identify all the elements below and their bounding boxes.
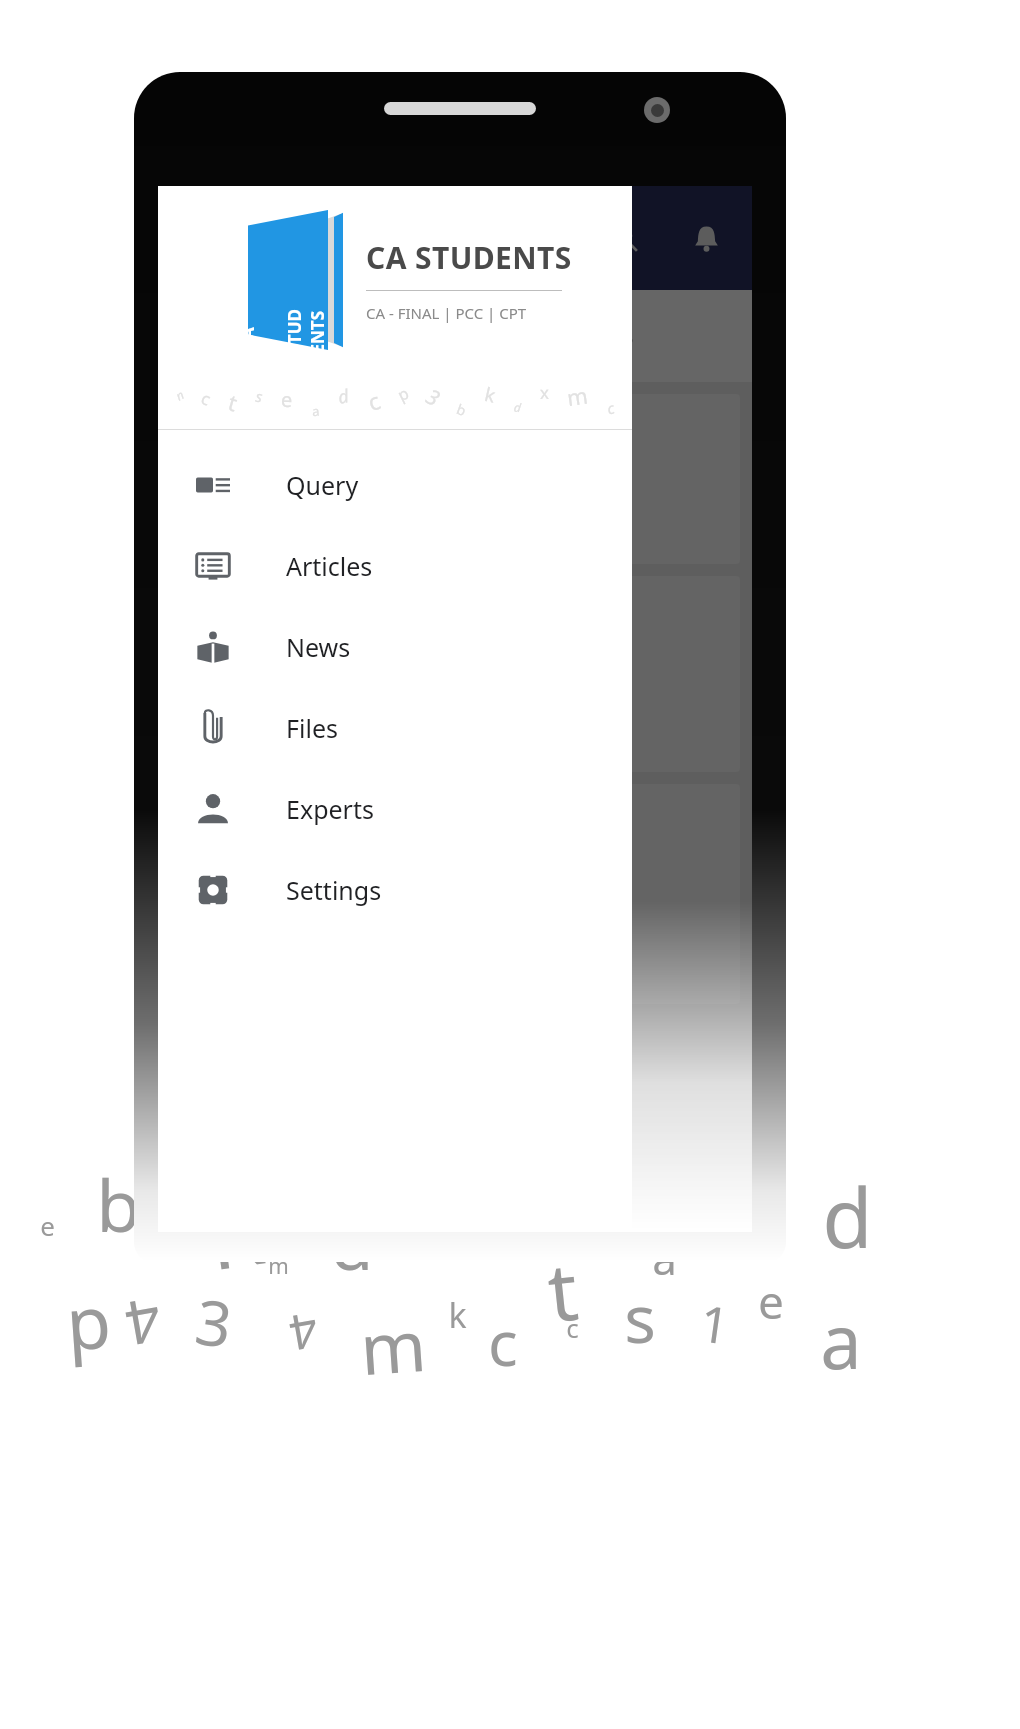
staticText: 4: [119, 1280, 168, 1366]
staticText: News: [286, 630, 351, 664]
staticText: c: [363, 384, 385, 417]
staticText: 3: [190, 1278, 238, 1366]
staticText: m: [357, 1296, 429, 1395]
staticText: d: [822, 1160, 873, 1272]
button[interactable]: India's dia's: [170, 394, 740, 564]
staticText: c: [488, 1300, 518, 1384]
staticText: c: [604, 397, 616, 418]
staticText: s: [254, 386, 264, 406]
staticText: x: [540, 381, 549, 404]
button[interactable]: Search: [596, 210, 652, 266]
button[interactable]: News: [158, 606, 632, 687]
staticText: e: [40, 1208, 55, 1243]
staticText: e: [280, 386, 293, 413]
staticText: p: [63, 1270, 114, 1371]
staticText: b: [454, 399, 469, 420]
staticText: d: [330, 1195, 374, 1290]
staticText: c: [198, 386, 215, 411]
staticText: c: [752, 1228, 766, 1266]
staticText: 1: [695, 1288, 734, 1360]
button[interactable]: Experts: [158, 768, 632, 849]
staticText: e: [758, 1270, 784, 1333]
staticText: t: [542, 1234, 583, 1345]
staticText: Settings: [286, 873, 382, 907]
staticText: Articles: [286, 549, 373, 583]
staticText: Files: [286, 711, 338, 745]
button[interactable]: Files: [158, 687, 632, 768]
staticText: m: [268, 1250, 289, 1280]
staticText: FILES: [573, 321, 635, 351]
staticText: 3: [421, 382, 445, 413]
staticText: t: [225, 386, 241, 417]
staticText: p: [394, 382, 412, 406]
staticText: a: [820, 1290, 862, 1391]
button[interactable]: Query: [158, 444, 632, 525]
button[interactable]: Articles: [158, 525, 632, 606]
staticText: K: [200, 1172, 270, 1295]
staticText: e: [412, 1222, 433, 1271]
button[interactable]: [170, 576, 740, 772]
staticText: k: [482, 381, 499, 409]
button[interactable]: FILES: [455, 290, 752, 382]
staticText: d: [513, 399, 522, 415]
staticText: m: [565, 380, 590, 412]
button[interactable]: Settings: [158, 849, 632, 930]
staticText: CA: [236, 327, 259, 350]
staticText: d: [335, 383, 351, 410]
staticText: s: [624, 1272, 656, 1362]
staticText: CA STUDENTS: [366, 237, 572, 278]
staticText: Experts: [286, 792, 374, 826]
staticText: n: [172, 386, 187, 404]
staticText: India's dia's: [194, 462, 335, 497]
staticText: a: [652, 1228, 677, 1288]
button[interactable]: Notifications: [678, 210, 734, 266]
staticText: STUDENTS: [282, 300, 328, 353]
staticText: Query: [286, 468, 359, 502]
staticText: India's Sahi: [194, 877, 332, 912]
staticText: k: [448, 1292, 467, 1338]
button[interactable]: India's Sahi: [170, 784, 740, 1004]
staticText: b: [96, 1155, 141, 1253]
staticText: 4: [285, 1298, 323, 1367]
staticText: a: [311, 402, 321, 420]
staticText: c: [566, 1310, 579, 1345]
staticText: CA - FINAL | PCC | CPT: [366, 303, 527, 323]
